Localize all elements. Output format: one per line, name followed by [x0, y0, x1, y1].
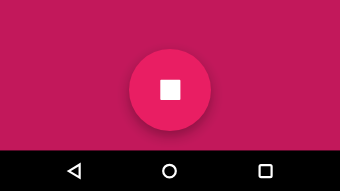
- button[interactable]: Back: [52, 150, 97, 191]
- button[interactable]: Home: [147, 150, 192, 191]
- button[interactable]: Recent apps: [243, 150, 288, 191]
- button[interactable]: Stop recording: [129, 49, 211, 131]
